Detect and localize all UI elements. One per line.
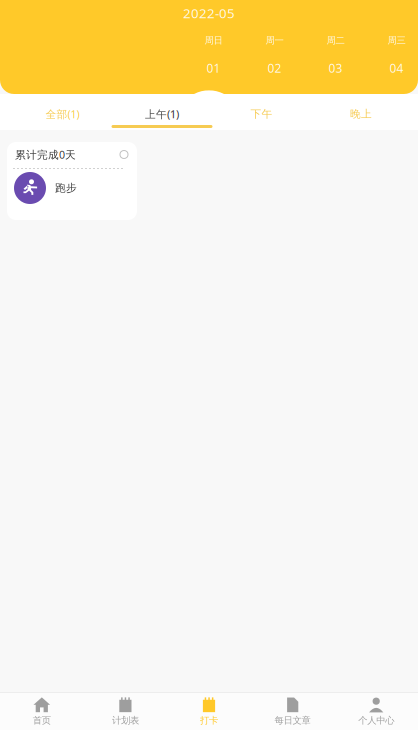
- staticText: 打卡: [200, 715, 218, 726]
- staticText: 首页: [33, 715, 51, 726]
- button[interactable]: 打卡: [167, 693, 251, 730]
- staticText: 周三: [387, 35, 405, 46]
- staticText: 累计完成0天: [15, 147, 76, 162]
- staticText: 周二: [326, 35, 344, 46]
- button[interactable]: 首页: [0, 693, 84, 730]
- staticText: 个人中心: [358, 715, 394, 726]
- button[interactable]: 个人中心: [334, 693, 418, 730]
- staticText: 周日: [204, 35, 222, 46]
- button[interactable]: 计划表: [84, 693, 167, 730]
- staticText: 03: [328, 60, 342, 76]
- staticText: 全部(1): [45, 107, 79, 121]
- staticText: 周一: [265, 35, 283, 46]
- button[interactable]: 周日: [183, 35, 244, 74]
- staticText: 晚上: [350, 107, 372, 120]
- button[interactable]: 周二: [305, 35, 366, 74]
- staticText: 每日文章: [275, 715, 311, 726]
- button[interactable]: 周三: [366, 35, 418, 74]
- staticText: 2022-05: [183, 4, 235, 22]
- button[interactable]: 下午: [211, 94, 310, 130]
- staticText: 02: [267, 60, 281, 76]
- button[interactable]: 周一: [244, 35, 305, 74]
- button[interactable]: 上午(1): [111, 94, 211, 130]
- button[interactable]: 每日文章: [251, 693, 334, 730]
- staticText: 上午(1): [145, 107, 179, 121]
- staticText: 下午: [250, 107, 272, 120]
- button[interactable]: 晚上: [310, 94, 410, 130]
- staticText: 计划表: [112, 715, 139, 726]
- staticText: 跑步: [55, 181, 77, 194]
- button[interactable]: 全部(1): [12, 94, 111, 130]
- button[interactable]: 累计完成0天: [7, 142, 137, 220]
- staticText: 04: [389, 60, 403, 76]
- staticText: 01: [206, 60, 220, 76]
